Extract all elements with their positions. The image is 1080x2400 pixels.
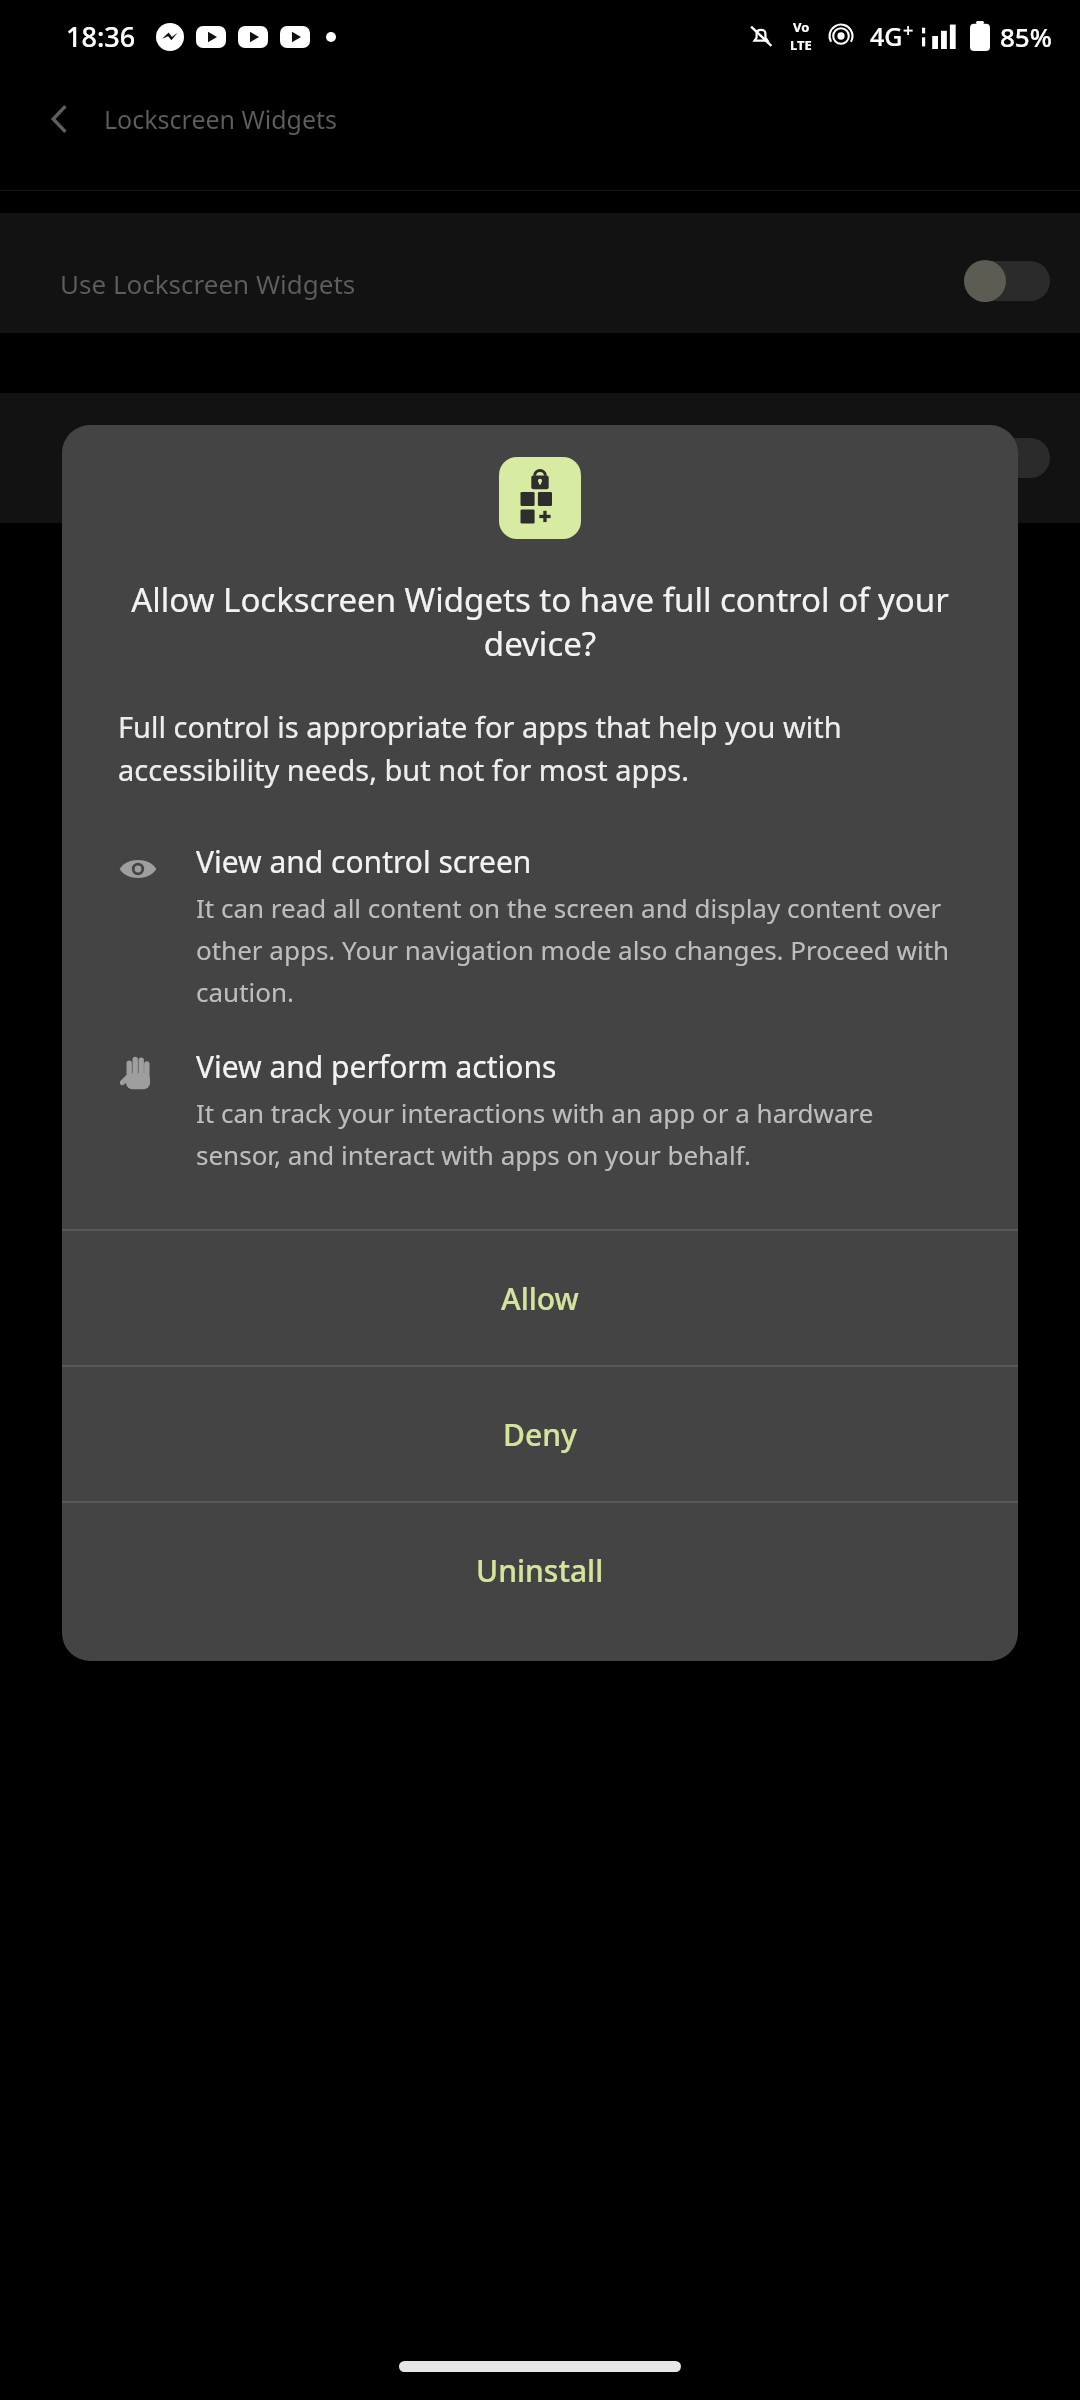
staticText: 85%: [1000, 19, 1052, 54]
staticText: LTE: [790, 36, 812, 54]
staticText: 18:36: [66, 18, 136, 55]
button[interactable]: Deny: [62, 1367, 1018, 1501]
staticText: Full control is appropriate for apps tha…: [118, 707, 962, 789]
button[interactable]: Uninstall: [62, 1503, 1018, 1637]
staticText: Deny: [503, 1414, 577, 1455]
staticText: It can read all content on the screen an…: [196, 890, 962, 1010]
staticText: +: [903, 18, 914, 43]
staticText: Allow: [501, 1278, 579, 1319]
staticText: Allow Lockscreen Widgets to have full co…: [106, 577, 974, 665]
staticText: Uninstall: [476, 1550, 604, 1591]
staticText: View and perform actions: [196, 1046, 557, 1087]
button[interactable]: Back: [30, 89, 90, 149]
staticText: It can track your interactions with an a…: [196, 1095, 962, 1173]
staticText: Use Lockscreen Widgets: [60, 266, 356, 301]
button[interactable]: Allow: [62, 1231, 1018, 1365]
staticText: Vo: [793, 18, 810, 36]
staticText: Lockscreen Widgets: [104, 102, 338, 136]
staticText: 4G: [870, 19, 903, 53]
staticText: View and control screen: [196, 841, 532, 882]
